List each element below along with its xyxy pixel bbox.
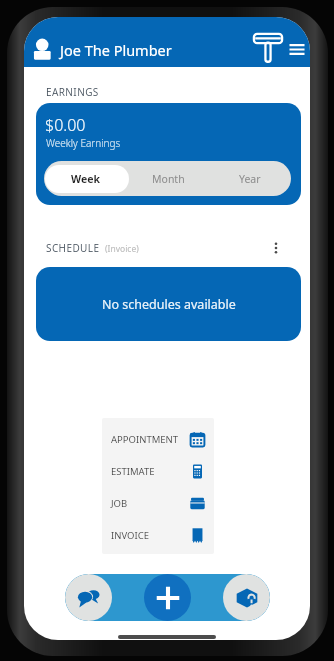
staticText: SCHEDULE — [46, 241, 100, 255]
staticText: ESTIMATE — [111, 465, 155, 478]
staticText: Week — [71, 172, 100, 186]
staticText: EARNINGS — [46, 85, 99, 99]
staticText: APPOINTMENT — [111, 433, 179, 446]
button[interactable]: Profile — [33, 36, 52, 55]
staticText: No schedules available — [102, 296, 236, 313]
staticText: INVOICE — [111, 529, 149, 542]
button[interactable]: Week — [44, 161, 127, 196]
button[interactable]: Add — [144, 574, 191, 621]
button[interactable]: Messages — [65, 574, 112, 621]
staticText: (Invoice) — [105, 243, 139, 255]
button[interactable]: ESTIMATE — [102, 455, 214, 487]
staticText: Weekly Earnings — [46, 136, 121, 150]
staticText: Year — [239, 172, 261, 186]
button[interactable]: More options — [267, 239, 285, 257]
staticText: Joe The Plumber — [60, 40, 172, 60]
button[interactable]: Menu — [289, 44, 305, 60]
button[interactable]: APPOINTMENT — [102, 423, 214, 455]
button[interactable]: INVOICE — [102, 519, 214, 551]
button[interactable]: Month — [127, 161, 209, 196]
staticText: $0.00 — [45, 114, 86, 136]
button[interactable]: App logo — [252, 32, 284, 64]
button[interactable]: Help — [223, 574, 270, 621]
staticText: Month — [152, 172, 185, 186]
staticText: JOB — [111, 497, 128, 510]
button[interactable]: Year — [209, 161, 291, 196]
button[interactable]: JOB — [102, 487, 214, 519]
